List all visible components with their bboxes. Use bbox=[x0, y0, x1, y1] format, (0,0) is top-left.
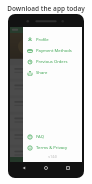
staticText: Previous Orders bbox=[36, 59, 68, 65]
staticText: Share bbox=[36, 70, 48, 76]
staticText: Profile bbox=[36, 37, 49, 43]
staticText: v 1.0.0 bbox=[23, 155, 82, 159]
staticText: Download the app today bbox=[0, 4, 92, 13]
button[interactable]: Previous Orders bbox=[23, 56, 82, 67]
button[interactable]: Back bbox=[18, 163, 30, 173]
button[interactable]: Terms & Privacy bbox=[23, 142, 82, 153]
button[interactable]: Recents bbox=[62, 163, 74, 173]
button[interactable]: Share bbox=[23, 67, 82, 78]
button[interactable]: Profile bbox=[23, 34, 82, 45]
staticText: FAQ bbox=[36, 134, 44, 140]
staticText: Terms & Privacy bbox=[36, 145, 68, 151]
button[interactable]: Home bbox=[40, 163, 52, 173]
staticText: Payment Methods bbox=[36, 48, 72, 54]
button[interactable]: FAQ bbox=[23, 131, 82, 142]
button[interactable]: Payment Methods bbox=[23, 45, 82, 56]
